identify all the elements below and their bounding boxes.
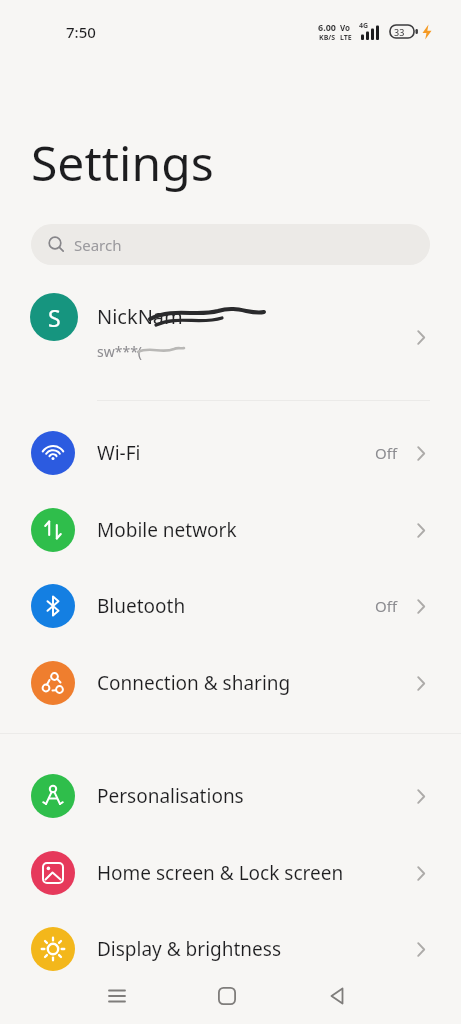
staticText: Search — [74, 235, 122, 255]
button[interactable] — [206, 975, 248, 1017]
staticText: Off — [375, 443, 398, 463]
staticText: sw***( — [97, 342, 143, 361]
button[interactable]: Home screen & Lock screen — [0, 835, 461, 911]
button[interactable]: S — [0, 285, 461, 375]
staticText: Off — [375, 596, 398, 616]
button[interactable] — [96, 975, 138, 1017]
staticText: Mobile network — [97, 517, 237, 543]
staticText: Vo — [340, 22, 351, 33]
button[interactable]: Connection & sharing — [0, 645, 461, 721]
staticText: S — [48, 302, 61, 333]
staticText: NickNam — [97, 303, 183, 330]
button[interactable]: Bluetooth — [0, 568, 461, 644]
button[interactable]: Mobile network — [0, 492, 461, 568]
button[interactable]: Display & brightness — [0, 911, 461, 987]
staticText: 4G — [359, 21, 369, 31]
staticText: Connection & sharing — [97, 670, 291, 696]
staticText: KB/S — [319, 33, 336, 43]
button[interactable]: Personalisations — [0, 758, 461, 834]
staticText: 7:50 — [66, 22, 96, 42]
staticText: Bluetooth — [97, 593, 186, 619]
button[interactable]: Search — [31, 224, 430, 265]
staticText: Display & brightness — [97, 936, 281, 962]
staticText: Home screen & Lock screen — [97, 860, 344, 886]
staticText: 6.00 — [318, 21, 336, 33]
staticText: 33 — [394, 26, 405, 38]
staticText: Personalisations — [97, 783, 244, 809]
button[interactable] — [316, 975, 358, 1017]
staticText: Wi-Fi — [97, 440, 141, 466]
staticText: LTE — [340, 33, 352, 43]
staticText: Settings — [31, 130, 214, 195]
button[interactable]: Wi-Fi — [0, 415, 461, 491]
